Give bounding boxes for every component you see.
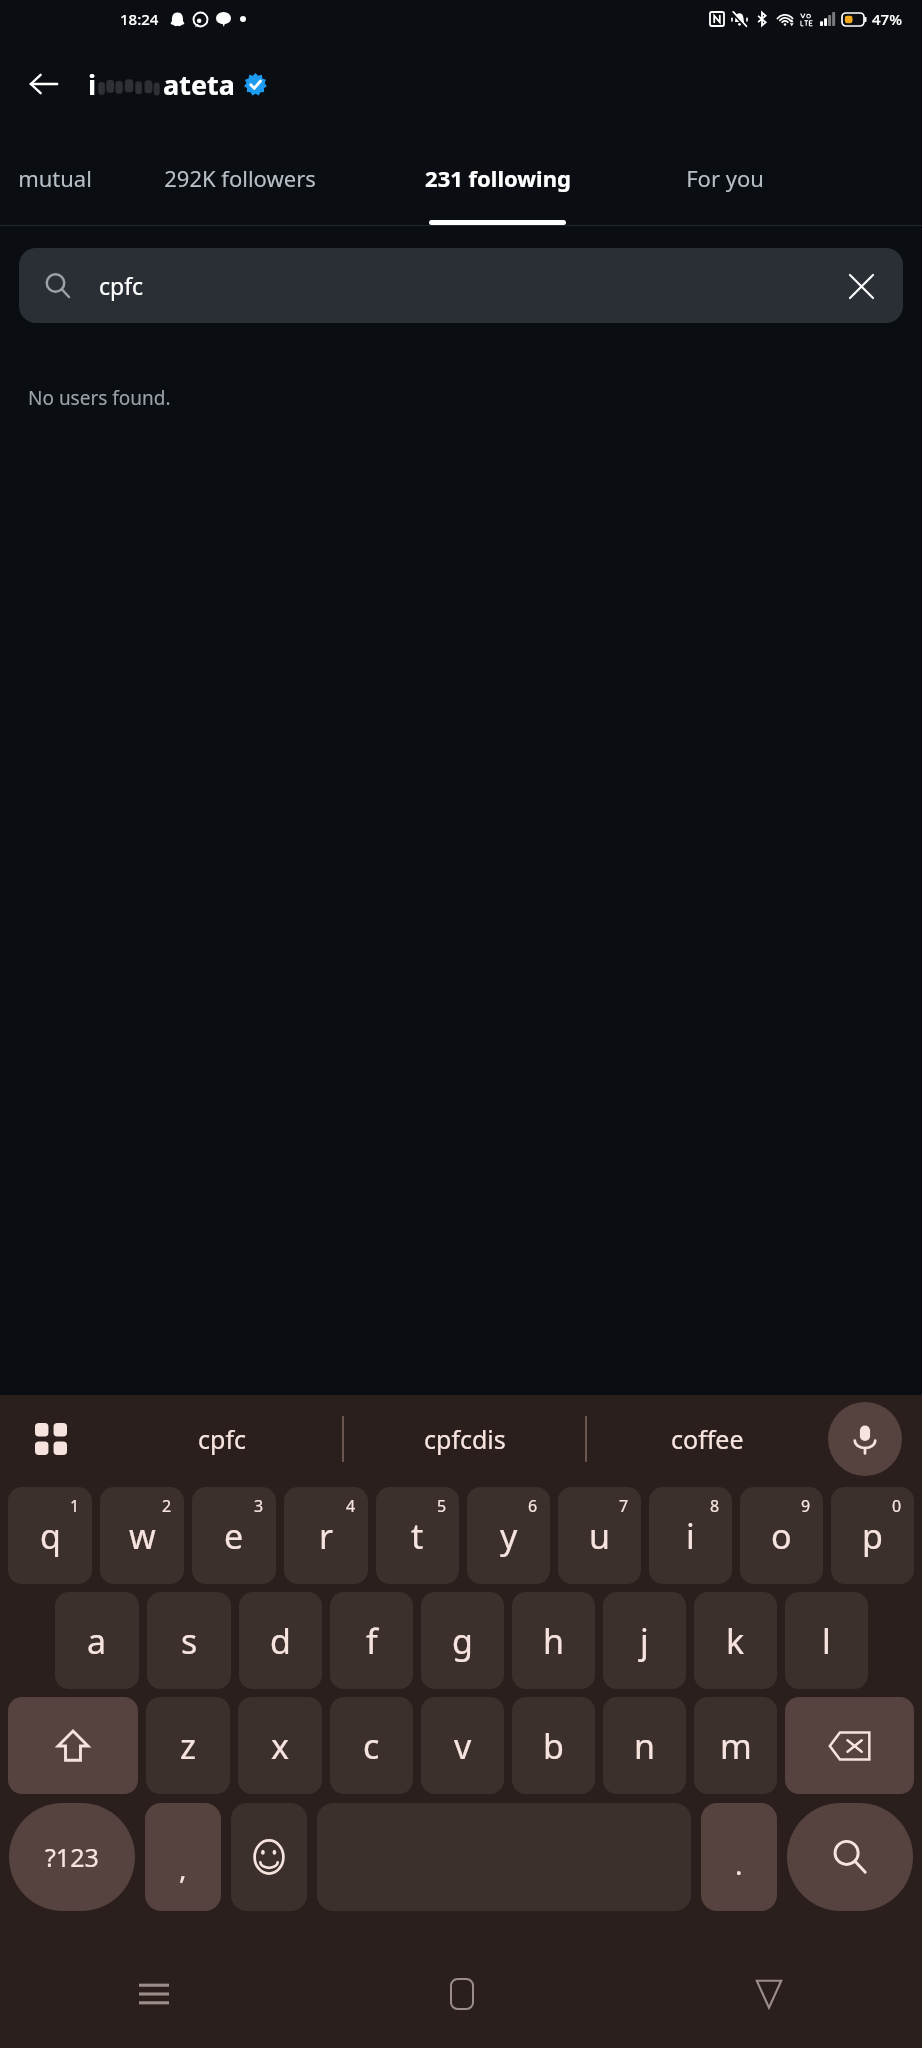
staticText: f: [366, 1618, 378, 1664]
button[interactable]: mutual: [0, 130, 110, 225]
staticText: p: [862, 1513, 883, 1559]
staticText: j: [640, 1618, 649, 1664]
button[interactable]: Home: [308, 1940, 615, 2048]
button[interactable]: Keyboard options: [20, 1408, 82, 1470]
button[interactable]: u: [558, 1487, 641, 1584]
staticText: d: [270, 1618, 291, 1664]
staticText: y: [500, 1513, 518, 1559]
staticText: s: [181, 1618, 198, 1664]
button[interactable]: s: [147, 1592, 231, 1689]
button[interactable]: Shift: [8, 1697, 138, 1794]
staticText: u: [589, 1513, 611, 1559]
button[interactable]: q: [8, 1487, 92, 1584]
staticText: 3: [254, 1495, 264, 1517]
staticText: c: [363, 1723, 380, 1769]
staticText: h: [543, 1618, 565, 1664]
button[interactable]: cpfc: [102, 1395, 342, 1483]
staticText: 7: [619, 1495, 629, 1517]
button[interactable]: j: [603, 1592, 686, 1689]
staticText: k: [726, 1618, 745, 1664]
button[interactable]: Voice input: [828, 1402, 902, 1476]
button[interactable]: l: [785, 1592, 868, 1689]
staticText: mutual: [18, 163, 92, 193]
staticText: x: [271, 1723, 289, 1769]
staticText: 9: [801, 1495, 811, 1517]
staticText: g: [452, 1618, 473, 1664]
staticText: w: [129, 1513, 156, 1559]
staticText: l: [822, 1618, 831, 1664]
staticText: v: [454, 1723, 472, 1769]
button[interactable]: coffee: [587, 1395, 828, 1483]
staticText: m: [720, 1723, 752, 1769]
button[interactable]: m: [694, 1697, 777, 1794]
staticText: n: [634, 1723, 656, 1769]
staticText: t: [411, 1513, 424, 1559]
button[interactable]: 292K followers: [110, 130, 370, 225]
button[interactable]: f: [330, 1592, 413, 1689]
button[interactable]: ,: [145, 1803, 221, 1911]
button[interactable]: t: [376, 1487, 459, 1584]
staticText: a: [87, 1618, 107, 1664]
button[interactable]: Search: [787, 1803, 913, 1911]
staticText: i: [88, 66, 97, 103]
button[interactable]: Clear search: [833, 258, 889, 314]
staticText: ?123: [45, 1840, 99, 1874]
button[interactable]: Backspace: [785, 1697, 914, 1794]
staticText: 6: [528, 1495, 538, 1517]
button[interactable]: For you: [625, 130, 825, 225]
staticText: 5: [437, 1495, 447, 1517]
button[interactable]: w: [100, 1487, 184, 1584]
staticText: ,: [179, 1849, 187, 1887]
button[interactable]: d: [239, 1592, 322, 1689]
button[interactable]: a: [55, 1592, 139, 1689]
button[interactable]: cpfcdis: [344, 1395, 585, 1483]
staticText: 1: [70, 1495, 80, 1517]
button[interactable]: i: [649, 1487, 732, 1584]
staticText: 292K followers: [164, 163, 316, 193]
staticText: cpfc: [198, 1422, 246, 1456]
button[interactable]: p: [831, 1487, 914, 1584]
staticText: o: [771, 1513, 792, 1559]
button[interactable]: cpfc: [19, 248, 903, 323]
button[interactable]: Emoji: [231, 1803, 307, 1911]
staticText: 231 following: [425, 163, 571, 193]
staticText: coffee: [671, 1422, 744, 1456]
button[interactable]: Back: [14, 54, 74, 114]
button[interactable]: e: [192, 1487, 276, 1584]
staticText: 8: [710, 1495, 720, 1517]
button[interactable]: n: [603, 1697, 686, 1794]
button[interactable]: x: [238, 1697, 322, 1794]
button[interactable]: r: [284, 1487, 368, 1584]
button[interactable]: 231 following: [370, 130, 625, 225]
staticText: .: [735, 1845, 743, 1883]
button[interactable]: z: [146, 1697, 230, 1794]
button[interactable]: g: [421, 1592, 504, 1689]
staticText: 2: [162, 1495, 172, 1517]
staticText: b: [543, 1723, 564, 1769]
button[interactable]: b: [512, 1697, 595, 1794]
staticText: e: [224, 1513, 244, 1559]
staticText: i: [686, 1513, 695, 1559]
staticText: cpfcdis: [424, 1422, 506, 1456]
staticText: For you: [686, 163, 764, 193]
staticText: 4: [346, 1495, 356, 1517]
staticText: z: [180, 1723, 196, 1769]
staticText: 0: [892, 1495, 902, 1517]
button[interactable]: c: [330, 1697, 413, 1794]
button[interactable]: h: [512, 1592, 595, 1689]
button[interactable]: Recent apps: [0, 1940, 308, 2048]
button[interactable]: ?123: [9, 1803, 135, 1911]
staticText: r: [319, 1513, 334, 1559]
button[interactable]: .: [701, 1803, 777, 1911]
staticText: q: [40, 1513, 61, 1559]
button[interactable]: k: [694, 1592, 777, 1689]
staticText: 47%: [872, 9, 902, 29]
staticText: 18:24: [120, 9, 159, 29]
button[interactable]: o: [740, 1487, 823, 1584]
button[interactable]: Back: [615, 1940, 922, 2048]
button[interactable]: y: [467, 1487, 550, 1584]
staticText: cpfc: [99, 270, 144, 301]
staticText: No users found.: [28, 385, 171, 411]
button[interactable]: v: [421, 1697, 504, 1794]
